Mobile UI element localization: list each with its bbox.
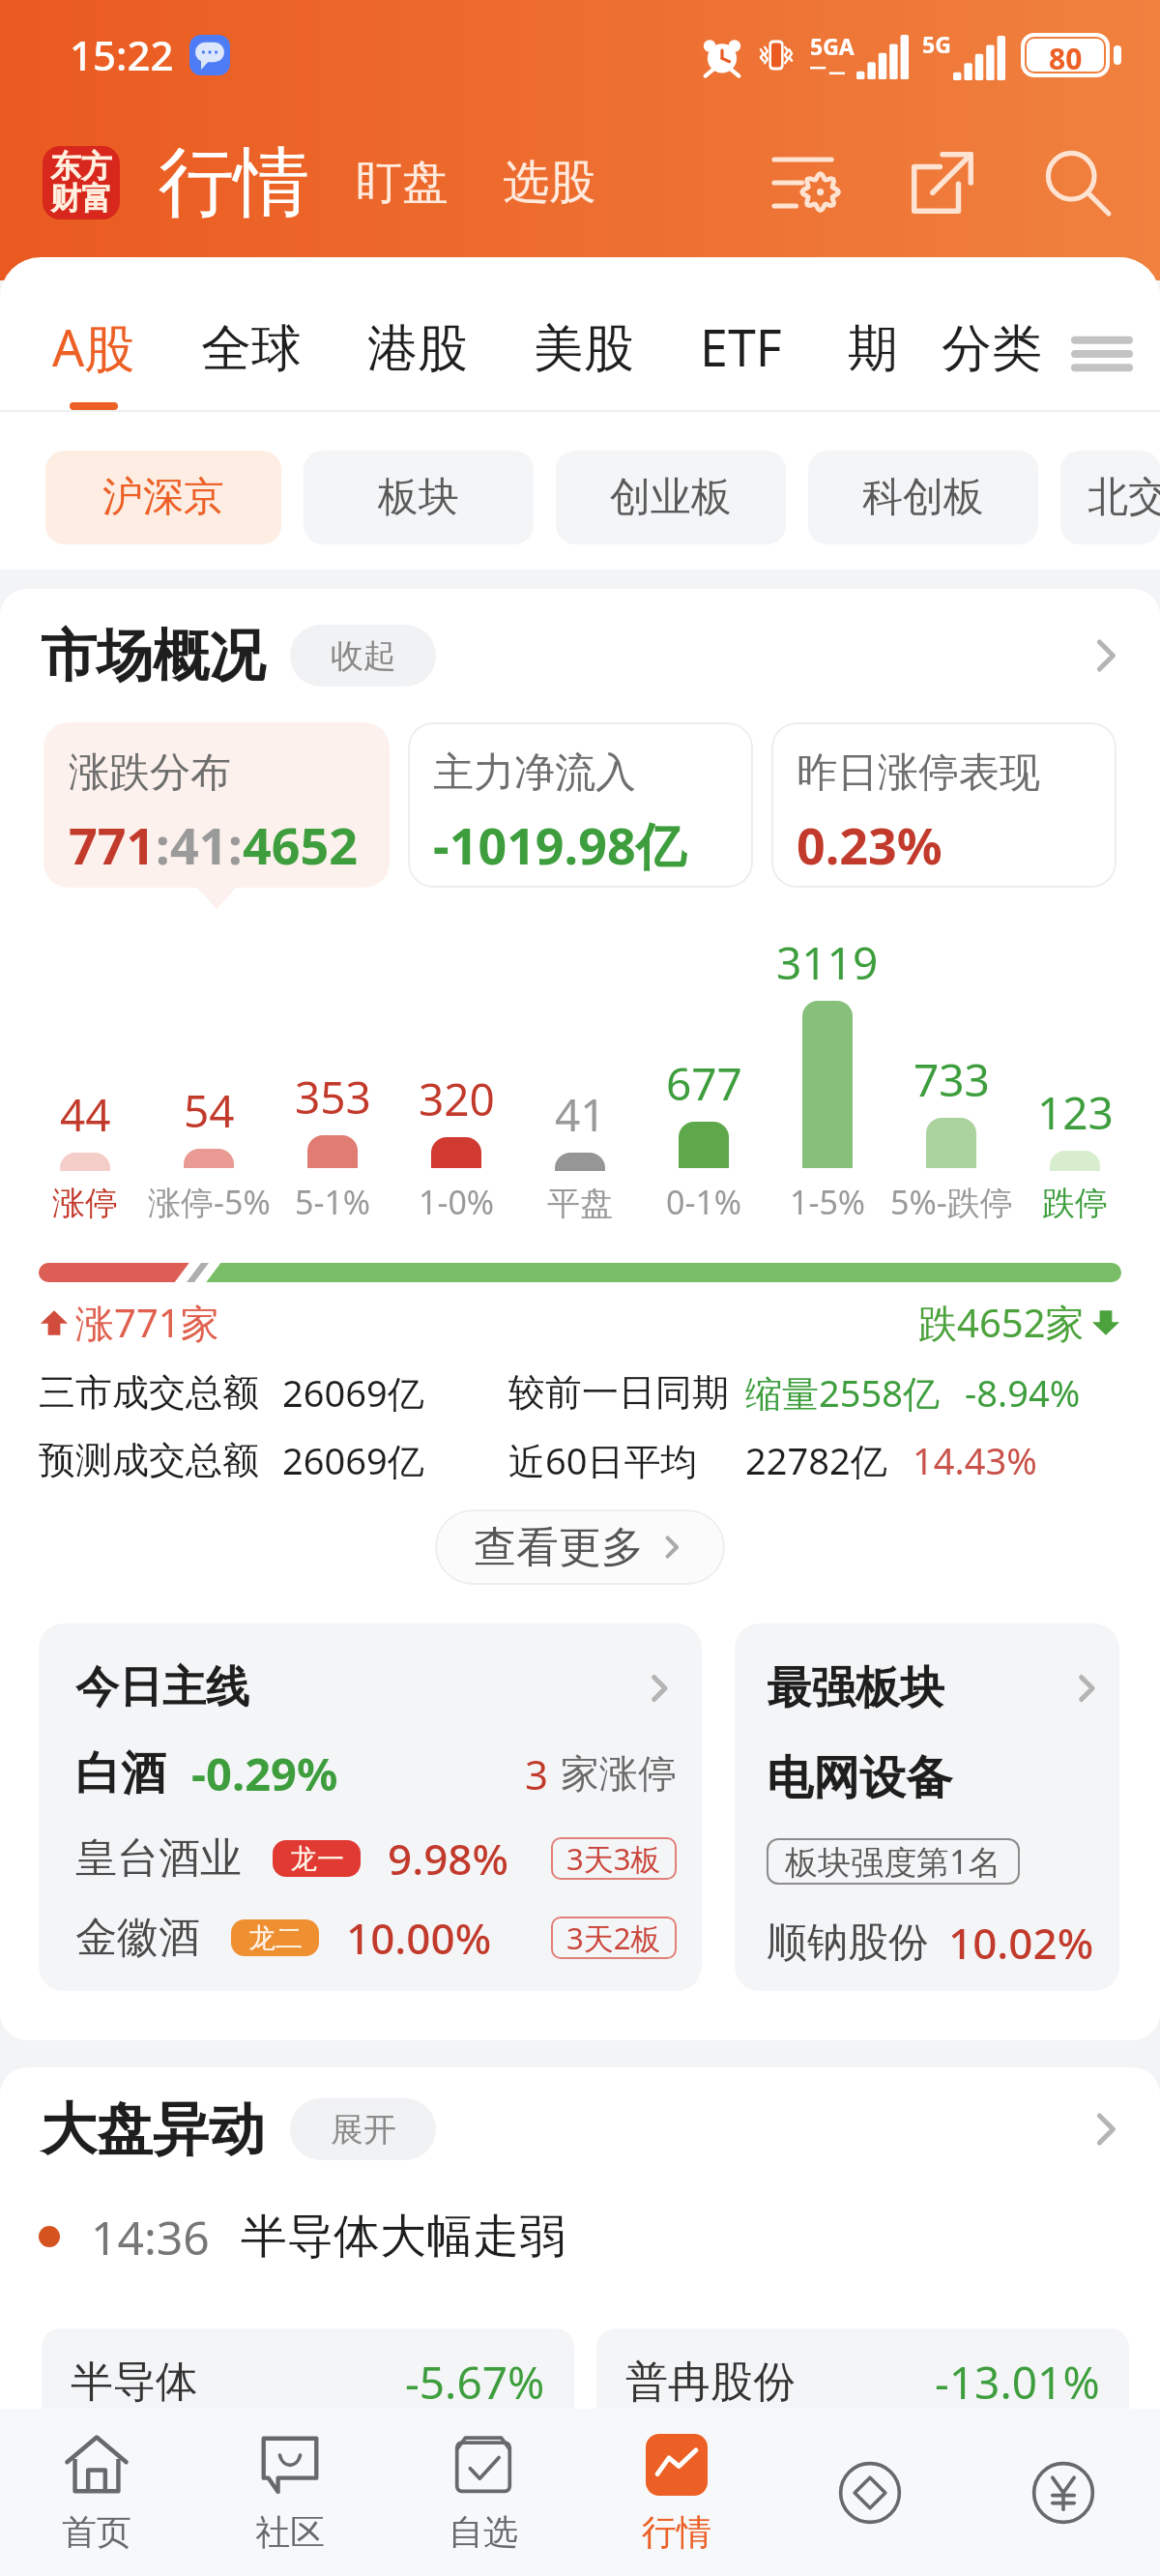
- button[interactable]: 首页: [0, 2409, 193, 2576]
- button[interactable]: 社区: [193, 2409, 387, 2576]
- staticText: 北交所: [1087, 472, 1160, 523]
- button[interactable]: 今日主线: [39, 1624, 702, 1991]
- staticText: 涨跌分布: [69, 747, 231, 799]
- button[interactable]: 创业板: [556, 451, 786, 544]
- button[interactable]: ETF: [700, 257, 782, 410]
- button[interactable]: 半导体: [42, 2328, 574, 2435]
- button[interactable]: 北交所: [1060, 451, 1160, 544]
- staticText: 5%-跌停: [890, 1180, 1013, 1224]
- staticText: 320: [419, 1068, 495, 1129]
- staticText: 3119: [776, 932, 879, 993]
- staticText: 龙二: [248, 1921, 303, 1955]
- staticText: 查看更多: [474, 1521, 644, 1574]
- staticText: 1-5%: [790, 1180, 866, 1224]
- staticText: :: [156, 810, 170, 879]
- button[interactable]: 主力净流入: [408, 722, 753, 888]
- button[interactable]: 盯盘: [356, 154, 449, 212]
- staticText: 3天2板: [566, 1917, 661, 1958]
- staticText: 半导体大幅走弱: [241, 2208, 565, 2266]
- staticText: 44: [60, 1084, 111, 1145]
- staticText: 顺钠股份: [767, 1917, 929, 1969]
- button[interactable]: Menu: [1075, 327, 1129, 381]
- staticText: 缩量2558亿: [745, 1367, 940, 1418]
- staticText: 26069亿: [282, 1367, 424, 1418]
- button[interactable]: 全球: [201, 257, 302, 410]
- staticText: 创业板: [610, 472, 732, 523]
- button[interactable]: 自选: [387, 2409, 580, 2576]
- staticText: 展开: [331, 2109, 396, 2151]
- staticText: 733: [913, 1049, 990, 1110]
- staticText: 9.98%: [388, 1830, 508, 1888]
- staticText: 近60日平均: [508, 1435, 698, 1485]
- staticText: 平盘: [547, 1183, 613, 1224]
- button[interactable]: 市场概况: [0, 589, 1160, 722]
- staticText: 行情: [642, 2510, 711, 2554]
- button[interactable]: 板块: [304, 451, 534, 544]
- staticText: 涨771家: [75, 1296, 219, 1349]
- button[interactable]: 收起: [290, 625, 436, 687]
- staticText: 4652: [243, 810, 358, 879]
- staticText: 最强板块: [767, 1660, 944, 1716]
- staticText: 板块: [378, 472, 459, 523]
- staticText: 期: [848, 317, 898, 381]
- staticText: 677: [666, 1053, 742, 1114]
- staticText: 自选: [449, 2510, 518, 2554]
- staticText: 0-1%: [666, 1180, 742, 1224]
- button[interactable]: 查看更多: [435, 1509, 725, 1585]
- button[interactable]: 科创板: [808, 451, 1038, 544]
- staticText: 5-1%: [295, 1180, 371, 1224]
- staticText: A股: [52, 312, 135, 381]
- staticText: 22782亿: [745, 1435, 887, 1485]
- staticText: 涨停-5%: [148, 1180, 271, 1224]
- staticText: 3: [525, 1746, 549, 1801]
- button[interactable]: 期: [848, 257, 898, 410]
- staticText: 收起: [331, 635, 396, 677]
- button[interactable]: 大盘异动: [0, 2067, 1160, 2191]
- button[interactable]: 分类: [942, 317, 1042, 381]
- staticText: 涨停: [52, 1183, 118, 1224]
- staticText: 14:36: [91, 2206, 210, 2269]
- staticText: 41: [170, 810, 228, 879]
- button[interactable]: Finance: [967, 2409, 1160, 2576]
- staticText: 板块强度第1名: [785, 1839, 1001, 1884]
- button[interactable]: 美股: [534, 257, 634, 410]
- button[interactable]: 沪深京: [45, 451, 281, 544]
- staticText: 预测成交总额: [39, 1437, 259, 1483]
- staticText: 电网设备: [767, 1749, 952, 1807]
- staticText: 10.00%: [346, 1909, 492, 1967]
- button[interactable]: A股: [52, 257, 135, 410]
- staticText: 三市成交总额: [39, 1369, 259, 1416]
- button[interactable]: 涨跌分布: [43, 722, 390, 888]
- staticText: 跌4652家: [918, 1296, 1085, 1349]
- staticText: 今日主线: [75, 1660, 249, 1715]
- staticText: 54: [184, 1080, 235, 1141]
- button[interactable]: Search: [1025, 130, 1131, 236]
- staticText: -1019.98亿: [433, 810, 686, 879]
- button[interactable]: 行情: [159, 135, 309, 230]
- button[interactable]: 港股: [367, 257, 468, 410]
- button[interactable]: 普冉股份: [596, 2328, 1129, 2435]
- staticText: 东方 财富: [50, 147, 112, 219]
- staticText: 美股: [534, 317, 634, 381]
- staticText: 半导体: [71, 2356, 198, 2409]
- staticText: 41: [555, 1084, 606, 1145]
- button[interactable]: 东方 财富: [43, 146, 120, 220]
- staticText: 社区: [255, 2510, 325, 2554]
- button[interactable]: 选股: [503, 154, 595, 212]
- staticText: 首页: [62, 2510, 131, 2554]
- button[interactable]: 展开: [290, 2098, 436, 2160]
- button[interactable]: 行情: [580, 2409, 773, 2576]
- staticText: 26069亿: [282, 1435, 424, 1485]
- staticText: -0.29%: [191, 1742, 338, 1804]
- staticText: 龙一: [290, 1842, 344, 1876]
- button[interactable]: Funds: [773, 2409, 967, 2576]
- staticText: 皇台酒业: [75, 1832, 242, 1885]
- button[interactable]: Share: [889, 130, 996, 236]
- button[interactable]: 昨日涨停表现: [771, 722, 1116, 888]
- button[interactable]: Settings: [754, 130, 860, 236]
- button[interactable]: 最强板块: [735, 1624, 1119, 1991]
- staticText: ETF: [700, 312, 782, 381]
- staticText: 0.23%: [797, 810, 942, 879]
- staticText: 771: [69, 810, 156, 879]
- staticText: 全球: [201, 317, 302, 381]
